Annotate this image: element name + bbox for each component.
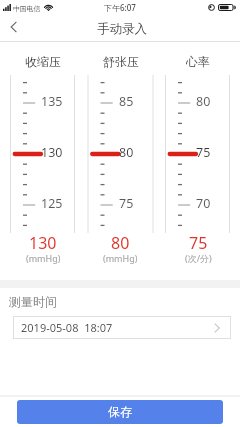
button[interactable]: 保存 [17, 400, 223, 424]
staticText: 下午6:07 [104, 2, 136, 13]
staticText: 收缩压 [25, 54, 61, 68]
staticText: 75 [189, 232, 208, 252]
staticText: 中国电信 [13, 4, 41, 13]
staticText: 85 [119, 93, 134, 110]
staticText: 80 [119, 144, 134, 161]
staticText: 75 [196, 144, 211, 161]
staticText: 保存 [108, 404, 132, 419]
staticText: 75 [119, 195, 134, 212]
button[interactable]: 2019-05-08 18:07 [13, 316, 231, 339]
staticText: (mmHg) [26, 252, 61, 264]
staticText: (mmHg) [103, 252, 138, 264]
staticText: 心率 [186, 54, 210, 68]
staticText: 130 [29, 232, 57, 252]
staticText: 手动录入 [97, 21, 147, 37]
staticText: 2019-05-08 18:07 [21, 320, 113, 335]
staticText: 80 [111, 232, 130, 252]
staticText: 80 [196, 93, 211, 110]
staticText: 135 [41, 93, 63, 110]
staticText: 舒张压 [103, 54, 139, 68]
staticText: 125 [41, 195, 63, 212]
staticText: 测量时间 [9, 294, 57, 309]
staticText: 130 [41, 144, 63, 161]
staticText: 70 [196, 195, 211, 212]
button[interactable]: Back [0, 16, 27, 42]
staticText: (次/分) [185, 252, 212, 264]
